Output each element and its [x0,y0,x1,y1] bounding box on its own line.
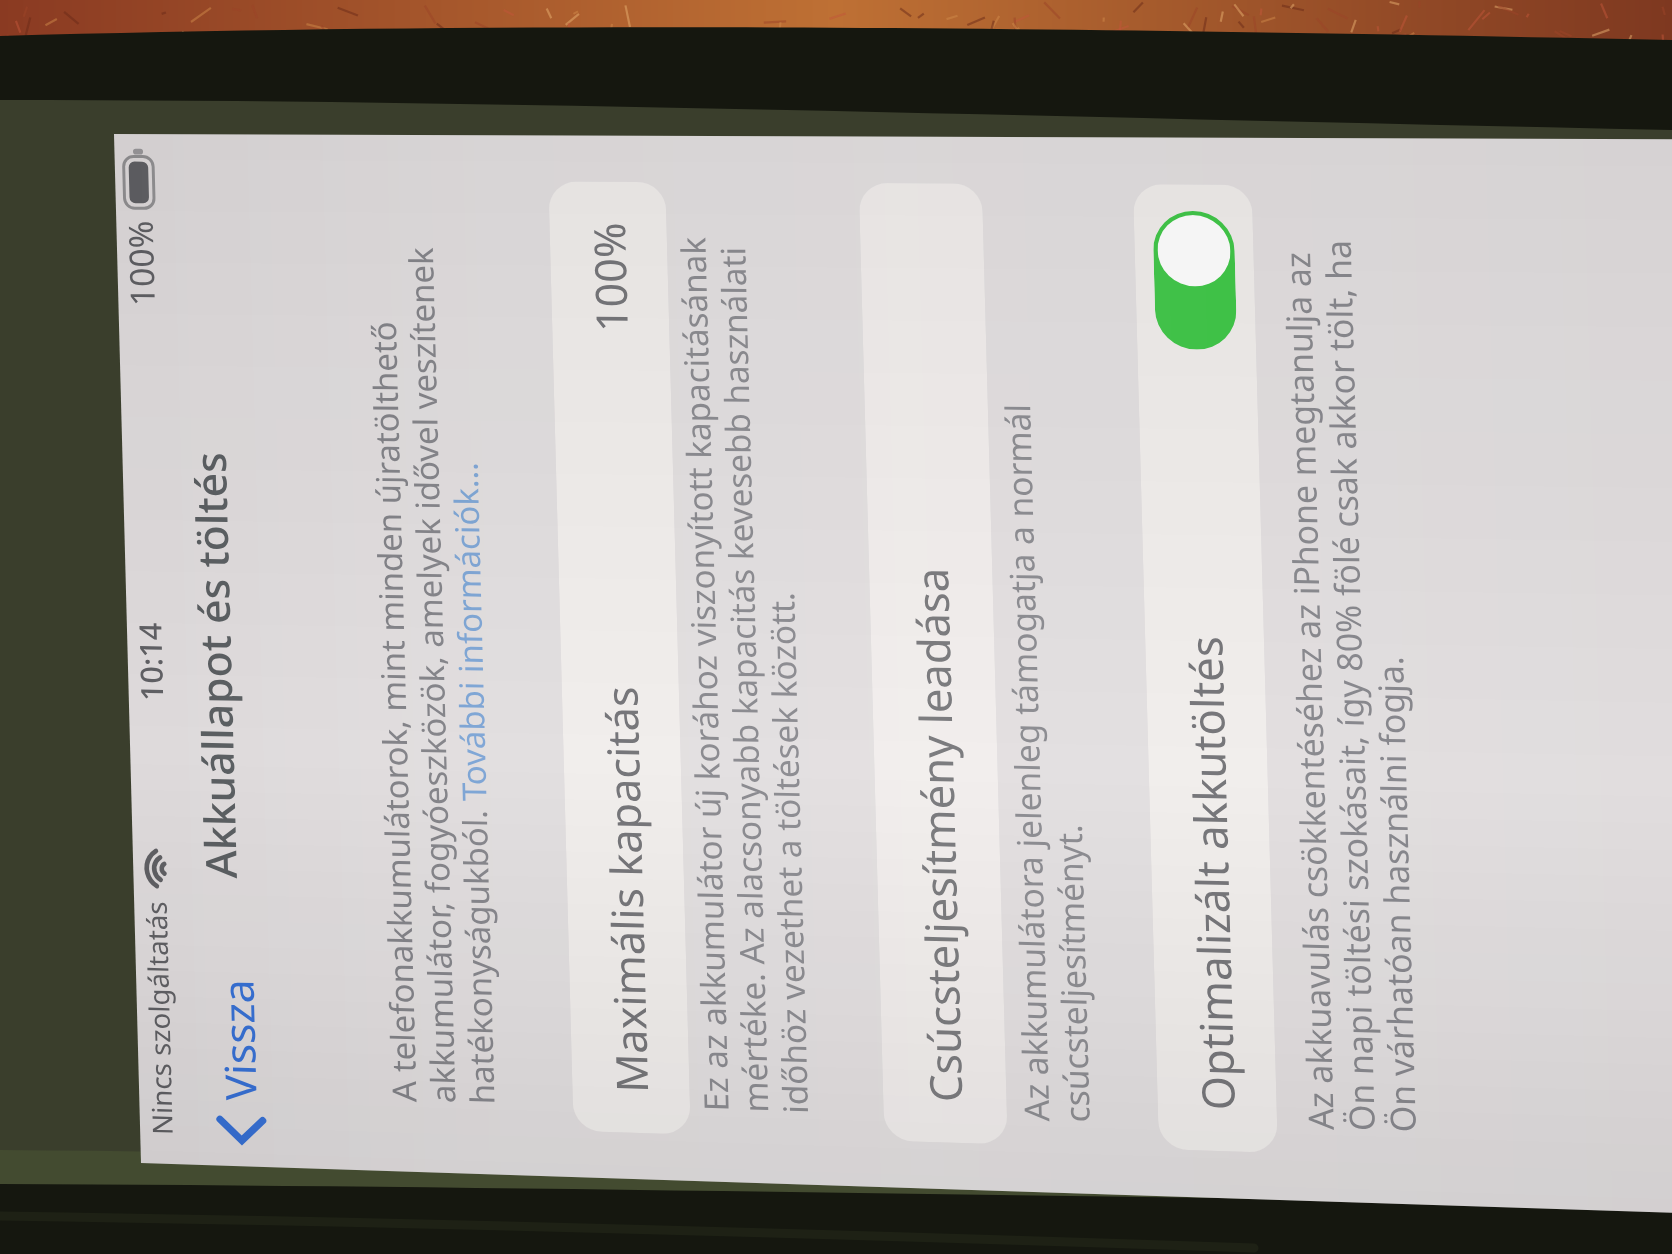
staticText: Maximális kapacitás [412,651,842,1125]
staticText: 100% [530,188,690,366]
staticText: Csúcsteljesítmény leadása [664,530,1216,1134]
staticText: Az akkumulátora jelenleg támogatja a nor… [585,149,1515,1168]
staticText: Optimalizált akkutöltés [963,600,1463,1143]
staticText: Az akkuavulás csökkentéséhez az iPhone m… [863,128,1672,1199]
button[interactable]: Vissza [136,946,343,1176]
staticText: Vissza [155,947,323,1132]
staticText: Nincs szolgáltatás [35,880,283,1155]
button[interactable]: Maximális kapacitás [134,104,1118,1196]
button[interactable]: Optimalizált akkutöltés [705,107,1672,1214]
staticText: 100% [80,194,202,332]
button[interactable]: Csúcsteljesítmény leadása [437,103,1443,1208]
staticText: 10:14 [94,599,207,724]
staticText: Ez az akkumulátor új korához viszonyítot… [273,126,1227,1179]
staticText: Akkuállapot és töltés [0,415,438,911]
staticText: A telefonakkumulátorok, mint minden újra… [0,125,906,1169]
button[interactable]: Optimalizált akkutöltés bekapcsolva [1090,165,1300,395]
